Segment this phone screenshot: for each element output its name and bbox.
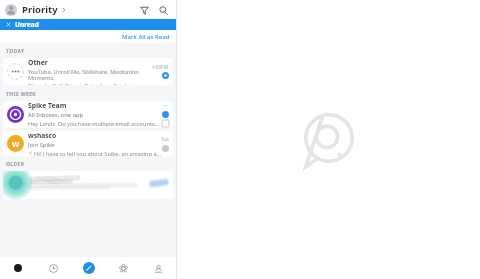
button[interactable]: Contacts: [141, 257, 176, 279]
button[interactable]: Unread: [0, 19, 176, 30]
button[interactable]: Search: [155, 2, 171, 18]
staticText: wshasco: [28, 131, 57, 140]
staticText: Bizvusly, Shift Digest, Priya from Fresh…: [28, 82, 152, 85]
staticText: 4:00PM: [152, 64, 169, 70]
button[interactable]: Spike Team: [3, 101, 173, 128]
staticText: Hey Lands Do you have multiple email acc…: [28, 120, 160, 128]
staticText: Hi! I have to tell you about Spike, an a…: [34, 150, 161, 156]
staticText: YouTube, Unroll Me, Skillshare, Meditati…: [28, 68, 152, 82]
button[interactable]: Filter: [136, 2, 152, 18]
button[interactable]: W: [3, 131, 173, 156]
button[interactable]: Snooze: [36, 257, 71, 279]
staticText: Other: [28, 58, 48, 67]
button[interactable]: Account: [5, 4, 17, 16]
staticText: TODAY: [6, 48, 25, 55]
staticText: W: [12, 139, 20, 149]
button[interactable]: Compose: [71, 257, 106, 279]
button[interactable]: Priority: [22, 3, 67, 16]
button[interactable]: Mark All as Read: [122, 33, 170, 41]
staticText: OLDER: [6, 161, 25, 168]
staticText: Mark All as Read: [122, 33, 170, 41]
button[interactable]: Groups: [106, 257, 141, 279]
staticText: All Inboxes, one app: [28, 111, 84, 119]
staticText: Priority: [22, 3, 58, 16]
staticText: Spike Team: [28, 101, 67, 110]
staticText: Tue: [161, 136, 169, 142]
button[interactable]: Other: [3, 58, 173, 85]
staticText: Unread: [15, 20, 39, 29]
button[interactable]: Inbox: [0, 257, 36, 279]
staticText: THIS WEEK: [6, 91, 37, 98]
staticText: Join Spike: [28, 141, 55, 149]
